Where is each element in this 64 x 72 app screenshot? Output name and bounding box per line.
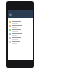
button[interactable] [8, 20, 33, 24]
button[interactable] [8, 36, 33, 40]
button[interactable] [8, 40, 33, 44]
button[interactable]: Menu [9, 13, 12, 16]
button[interactable] [8, 24, 33, 28]
button[interactable] [8, 28, 33, 32]
button[interactable] [8, 32, 33, 36]
